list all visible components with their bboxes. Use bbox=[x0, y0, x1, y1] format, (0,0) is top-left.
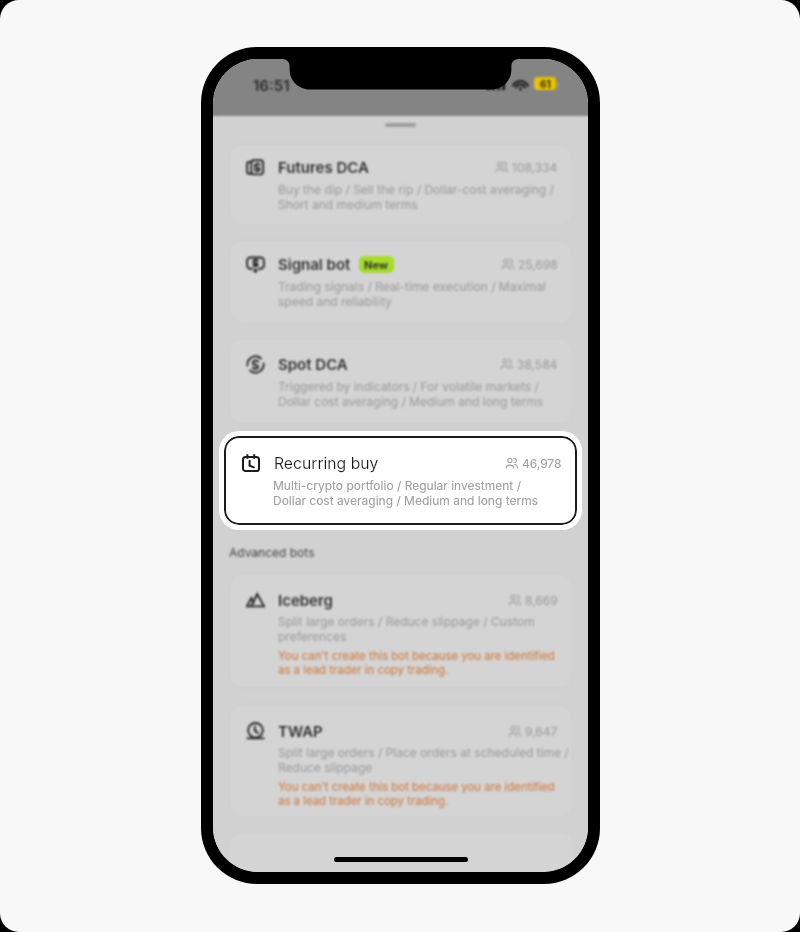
staticText: Buy the dip / Sell the rip / Dollar-cost… bbox=[278, 182, 554, 212]
staticText: 61 bbox=[540, 78, 551, 90]
staticText: 8,669 bbox=[525, 593, 558, 608]
staticText: You can't create this bot because you ar… bbox=[278, 780, 555, 808]
button[interactable]: Spot DCA bbox=[229, 338, 573, 425]
staticText: Trading signals / Real-time execution / … bbox=[278, 279, 547, 309]
staticText: You can't create this bot because you ar… bbox=[278, 649, 555, 677]
staticText: Signal bot bbox=[278, 255, 351, 273]
staticText: Iceberg bbox=[278, 591, 333, 609]
staticText: 46,978 bbox=[522, 456, 562, 471]
staticText: Advanced bots bbox=[229, 545, 315, 560]
button[interactable]: Recurring buy bbox=[224, 436, 577, 525]
staticText: Multi-crypto portfolio / Regular investm… bbox=[273, 478, 539, 508]
button[interactable]: TWAP bbox=[229, 704, 573, 818]
staticText: 9,647 bbox=[525, 724, 558, 739]
button[interactable]: Iceberg bbox=[229, 573, 573, 689]
staticText: 25,698 bbox=[518, 257, 558, 272]
staticText: New bbox=[364, 258, 389, 271]
staticText: 108,334 bbox=[512, 160, 558, 175]
staticText: Spot DCA bbox=[278, 355, 348, 373]
staticText: Split large orders / Place orders at sch… bbox=[278, 745, 569, 775]
staticText: Futures DCA bbox=[278, 158, 369, 176]
staticText: 38,584 bbox=[517, 357, 558, 372]
button[interactable]: Futures DCA bbox=[229, 143, 573, 226]
staticText: Triggered by indicators / For volatile m… bbox=[278, 379, 544, 409]
staticText: TWAP bbox=[278, 722, 323, 740]
button[interactable]: Signal bot bbox=[229, 239, 573, 324]
staticText: Recurring buy bbox=[274, 454, 379, 473]
staticText: Split large orders / Reduce slippage / C… bbox=[278, 614, 535, 644]
staticText: 16:51 bbox=[253, 76, 290, 94]
